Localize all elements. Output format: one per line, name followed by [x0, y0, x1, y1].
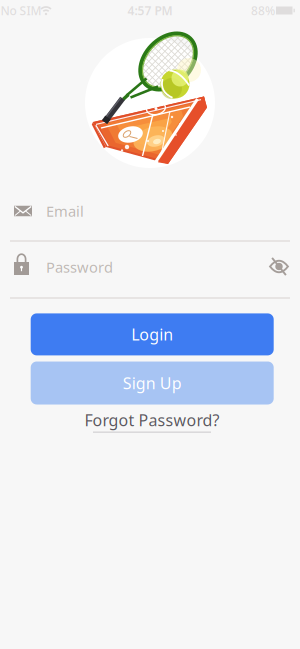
- button[interactable]: Forgot Password?: [84, 409, 219, 433]
- button[interactable]: Password: [0, 242, 300, 286]
- staticText: No SIM: [0, 2, 41, 18]
- button[interactable]: Email: [0, 189, 300, 233]
- staticText: Forgot Password?: [84, 409, 219, 431]
- staticText: Sign Up: [123, 372, 182, 394]
- staticText: Password: [46, 257, 113, 277]
- button[interactable]: Sign Up: [31, 361, 274, 404]
- button[interactable]: Show password: [264, 251, 294, 281]
- staticText: Login: [131, 324, 173, 345]
- staticText: 4:57 PM: [127, 2, 172, 18]
- staticText: Email: [46, 201, 84, 221]
- button[interactable]: Login: [31, 313, 274, 355]
- staticText: 88%: [251, 2, 275, 18]
